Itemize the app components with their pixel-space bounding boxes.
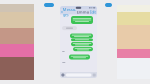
staticText: Edit bbox=[90, 9, 96, 15]
staticText: Messages bbox=[63, 7, 76, 17]
staticText: Emma bbox=[77, 9, 89, 15]
button[interactable]: Messages bbox=[60, 10, 76, 14]
button[interactable]: Send bbox=[93, 73, 96, 76]
button[interactable]: Edit bbox=[90, 10, 97, 14]
button[interactable]: Camera bbox=[61, 73, 64, 77]
